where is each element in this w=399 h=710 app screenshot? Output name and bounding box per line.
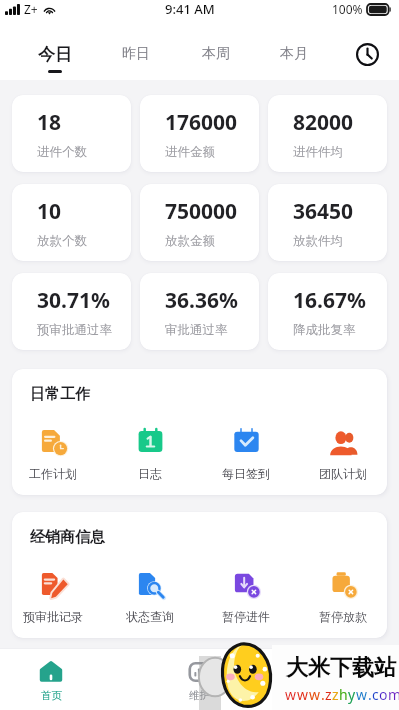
button[interactable]: 暂停放款 <box>303 570 383 624</box>
button[interactable]: 本月 <box>263 28 325 80</box>
button[interactable]: 30.71% <box>12 273 131 350</box>
staticText: w <box>356 685 368 704</box>
button[interactable]: 状态查询 <box>110 570 190 624</box>
staticText: 100% <box>332 1 363 17</box>
staticText: 9:41 AM <box>165 0 215 18</box>
staticText: o <box>379 685 388 704</box>
button[interactable]: 36.36% <box>140 273 259 350</box>
button[interactable]: 750000 <box>140 184 259 261</box>
staticText: m <box>388 685 399 704</box>
staticText: . <box>321 685 325 704</box>
staticText: 176000 <box>165 108 238 137</box>
button[interactable]: 本周 <box>185 28 247 80</box>
staticText: 首页 <box>41 689 62 702</box>
button[interactable]: 首页 <box>21 648 81 710</box>
button[interactable]: 预审批记录 <box>13 570 93 624</box>
staticText: w <box>297 685 309 704</box>
button[interactable]: 团队计划 <box>303 427 383 481</box>
staticText: 进件个数 <box>37 144 87 160</box>
staticText: y <box>348 685 356 704</box>
button[interactable]: 今日 <box>24 28 86 80</box>
button[interactable]: 工作计划 <box>13 427 93 481</box>
button[interactable]: History <box>341 28 393 80</box>
staticText: 大米下载站 <box>286 654 396 682</box>
staticText: c <box>372 685 379 704</box>
staticText: 审批通过率 <box>165 322 228 338</box>
button[interactable]: 我的 <box>317 648 377 710</box>
staticText: 日常工作 <box>30 385 90 404</box>
button[interactable]: 36450 <box>268 184 387 261</box>
button[interactable]: 昨日 <box>105 28 167 80</box>
button[interactable]: 暂停进件 <box>206 570 286 624</box>
staticText: z <box>325 685 332 704</box>
staticText: 预审批记录 <box>23 609 83 624</box>
staticText: 暂停进件 <box>222 609 270 624</box>
staticText: 30.71% <box>37 286 110 315</box>
staticText: 团队计划 <box>319 466 367 481</box>
button[interactable]: 176000 <box>140 95 259 172</box>
staticText: 36450 <box>293 197 354 226</box>
button[interactable]: 16.67% <box>268 273 387 350</box>
staticText: 我的 <box>337 689 358 702</box>
staticText: 状态查询 <box>126 609 174 624</box>
staticText: 16.67% <box>293 286 366 315</box>
staticText: 维护 <box>189 689 210 702</box>
button[interactable]: 82000 <box>268 95 387 172</box>
staticText: 放款金额 <box>165 233 215 249</box>
staticText: 750000 <box>165 197 238 226</box>
staticText: . <box>368 685 372 704</box>
staticText: 预审批通过率 <box>37 322 112 338</box>
staticText: Z+ <box>24 1 38 17</box>
staticText: 经销商信息 <box>30 528 105 547</box>
button[interactable]: 维护 <box>169 648 229 710</box>
staticText: h <box>339 685 348 704</box>
button[interactable]: 18 <box>12 95 131 172</box>
staticText: 工作计划 <box>29 466 77 481</box>
button[interactable]: 10 <box>12 184 131 261</box>
staticText: 82000 <box>293 108 354 137</box>
button[interactable]: 日志 <box>110 427 190 481</box>
staticText: 今日 <box>38 44 72 65</box>
staticText: 暂停放款 <box>319 609 367 624</box>
staticText: 放款个数 <box>37 233 87 249</box>
staticText: w <box>309 685 321 704</box>
staticText: 36.36% <box>165 286 238 315</box>
staticText: 日志 <box>138 466 162 481</box>
staticText: 每日签到 <box>222 466 270 481</box>
staticText: z <box>332 685 339 704</box>
staticText: 进件金额 <box>165 144 215 160</box>
staticText: 本月 <box>280 45 308 63</box>
staticText: 进件件均 <box>293 144 343 160</box>
staticText: 18 <box>37 108 62 137</box>
staticText: 10 <box>37 197 62 226</box>
staticText: 本周 <box>202 45 230 63</box>
staticText: w <box>285 685 297 704</box>
staticText: 放款件均 <box>293 233 343 249</box>
staticText: 昨日 <box>122 45 150 63</box>
button[interactable]: 每日签到 <box>206 427 286 481</box>
staticText: 降成批复率 <box>293 322 356 338</box>
